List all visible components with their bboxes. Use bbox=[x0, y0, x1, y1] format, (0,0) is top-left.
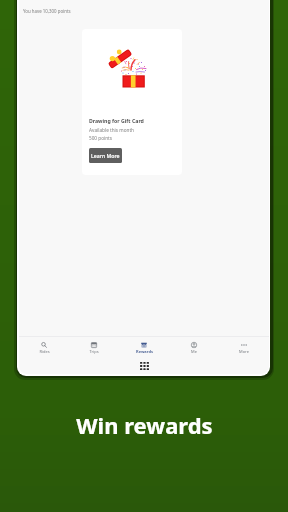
button[interactable]: All apps bbox=[140, 362, 149, 370]
staticText: Rewards bbox=[136, 349, 153, 354]
staticText: Available this month bbox=[89, 127, 134, 133]
staticText: Win rewards bbox=[76, 410, 213, 440]
staticText: Trips bbox=[89, 349, 99, 354]
staticText: You have 10,300 points bbox=[23, 8, 71, 14]
staticText: Rides bbox=[39, 349, 50, 354]
staticText: Me bbox=[191, 349, 197, 354]
staticText: Learn More bbox=[91, 152, 120, 159]
button[interactable]: Rides bbox=[19, 342, 69, 354]
button[interactable]: Trips bbox=[69, 342, 119, 354]
staticText: 500 points bbox=[89, 135, 113, 141]
button[interactable]: Learn More bbox=[89, 148, 122, 163]
button[interactable]: More bbox=[219, 342, 269, 354]
staticText: More bbox=[239, 349, 249, 354]
button[interactable]: Me bbox=[169, 342, 219, 354]
button[interactable]: Drawing for Gift Card bbox=[82, 29, 182, 175]
button[interactable]: Rewards bbox=[119, 342, 169, 354]
staticText: Drawing for Gift Card bbox=[89, 117, 144, 124]
